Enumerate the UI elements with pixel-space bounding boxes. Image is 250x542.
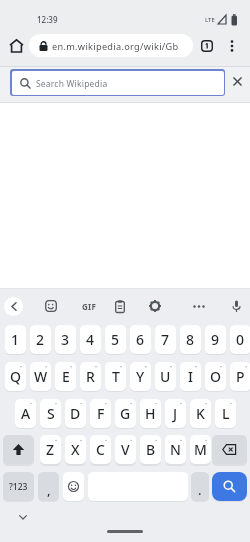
- button[interactable]: [229, 73, 246, 90]
- button[interactable]: Q: [5, 362, 26, 391]
- button[interactable]: 6: [130, 325, 151, 354]
- staticText: ,: [47, 481, 51, 499]
- button[interactable]: [14, 509, 32, 525]
- button[interactable]: S: [40, 399, 61, 428]
- staticText: H: [145, 404, 156, 423]
- button[interactable]: R: [80, 362, 101, 391]
- staticText: X: [71, 440, 80, 459]
- staticText: J: [173, 404, 178, 423]
- button[interactable]: [43, 298, 59, 314]
- staticText: 8: [186, 330, 195, 349]
- staticText: Search Wikipedia: [36, 78, 108, 90]
- button[interactable]: 8: [180, 325, 201, 354]
- staticText: A: [21, 404, 31, 423]
- button[interactable]: [147, 298, 163, 314]
- button[interactable]: GIF: [79, 299, 99, 313]
- staticText: Q: [10, 367, 21, 386]
- staticText: ?123: [9, 481, 28, 493]
- button[interactable]: [212, 472, 247, 501]
- button[interactable]: en.m.wikipedia.org/wiki/Gb: [29, 34, 193, 57]
- staticText: W: [34, 367, 48, 386]
- button[interactable]: [190, 299, 208, 313]
- staticText: LTE: [205, 16, 215, 24]
- button[interactable]: V: [115, 435, 136, 464]
- staticText: U: [160, 367, 171, 386]
- button[interactable]: ,: [38, 472, 59, 501]
- button[interactable]: E: [55, 362, 76, 391]
- staticText: 2: [36, 330, 45, 349]
- staticText: Y: [136, 367, 145, 386]
- button[interactable]: D: [65, 399, 86, 428]
- button[interactable]: T: [105, 362, 126, 391]
- button[interactable]: F: [90, 399, 111, 428]
- button[interactable]: I: [180, 362, 201, 391]
- button[interactable]: C: [90, 435, 111, 464]
- button[interactable]: K: [190, 399, 211, 428]
- staticText: F: [97, 404, 105, 423]
- button[interactable]: .: [191, 472, 209, 501]
- staticText: en.m.wikipedia.org/wiki/Gb: [52, 40, 179, 53]
- staticText: 3: [61, 330, 70, 349]
- button[interactable]: Y: [130, 362, 151, 391]
- button[interactable]: N: [165, 435, 186, 464]
- staticText: Z: [46, 440, 55, 459]
- staticText: K: [196, 404, 205, 423]
- staticText: 12:39: [37, 14, 58, 25]
- button[interactable]: [212, 435, 247, 464]
- staticText: M: [194, 440, 207, 459]
- button[interactable]: [3, 435, 34, 464]
- button[interactable]: A: [15, 399, 36, 428]
- button[interactable]: [63, 472, 84, 501]
- button[interactable]: G: [115, 399, 136, 428]
- staticText: GIF: [82, 301, 97, 312]
- staticText: C: [96, 440, 105, 459]
- button[interactable]: X: [65, 435, 86, 464]
- button[interactable]: [4, 297, 23, 316]
- button[interactable]: H: [140, 399, 161, 428]
- button[interactable]: [112, 298, 128, 314]
- staticText: 4: [86, 330, 95, 349]
- staticText: I: [188, 367, 193, 386]
- button[interactable]: L: [215, 399, 236, 428]
- button[interactable]: [198, 37, 215, 54]
- staticText: 1: [11, 330, 20, 349]
- button[interactable]: M: [190, 435, 211, 464]
- button[interactable]: [223, 37, 240, 54]
- button[interactable]: 9: [205, 325, 226, 354]
- staticText: 9: [211, 330, 220, 349]
- button[interactable]: Search Wikipedia: [10, 69, 225, 96]
- button[interactable]: 1: [5, 325, 26, 354]
- staticText: S: [47, 404, 55, 423]
- staticText: R: [86, 367, 95, 386]
- staticText: G: [120, 404, 131, 423]
- button[interactable]: 0: [230, 325, 250, 354]
- staticText: O: [210, 367, 221, 386]
- button[interactable]: P: [230, 362, 250, 391]
- button[interactable]: O: [205, 362, 226, 391]
- button[interactable]: 5: [105, 325, 126, 354]
- button[interactable]: [6, 35, 27, 56]
- staticText: 0: [236, 330, 245, 349]
- button[interactable]: U: [155, 362, 176, 391]
- button[interactable]: 4: [80, 325, 101, 354]
- staticText: 6: [136, 330, 145, 349]
- staticText: N: [170, 440, 181, 459]
- staticText: L: [222, 404, 230, 423]
- button[interactable]: 3: [55, 325, 76, 354]
- staticText: E: [62, 367, 70, 386]
- button[interactable]: B: [140, 435, 161, 464]
- staticText: D: [70, 404, 81, 423]
- button[interactable]: 2: [30, 325, 51, 354]
- staticText: P: [236, 367, 245, 386]
- staticText: T: [112, 367, 120, 386]
- staticText: 5: [111, 330, 120, 349]
- staticText: 7: [161, 330, 170, 349]
- button[interactable]: 7: [155, 325, 176, 354]
- button[interactable]: W: [30, 362, 51, 391]
- staticText: V: [121, 440, 130, 459]
- button[interactable]: [228, 297, 244, 315]
- button[interactable]: J: [165, 399, 186, 428]
- button[interactable]: ?123: [3, 472, 34, 501]
- button[interactable]: Z: [40, 435, 61, 464]
